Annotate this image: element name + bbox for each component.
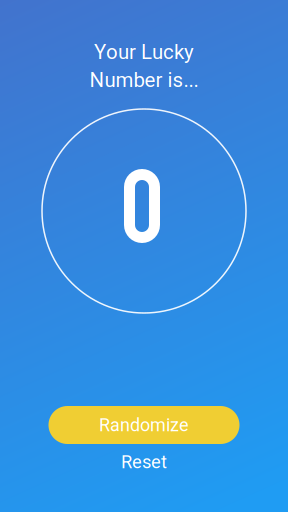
button[interactable]: Randomize xyxy=(48,406,239,444)
staticText: Number is... xyxy=(89,68,198,92)
staticText: Randomize xyxy=(99,414,189,436)
staticText: Reset xyxy=(121,451,167,473)
button[interactable]: Reset xyxy=(104,450,184,474)
staticText: Your Lucky xyxy=(94,40,194,64)
